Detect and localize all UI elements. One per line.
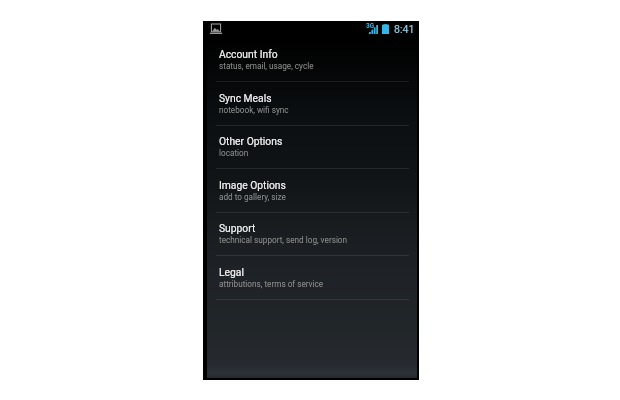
staticText: attributions, terms of service	[219, 279, 324, 289]
button[interactable]: Account Info	[203, 38, 419, 82]
staticText: Other Options	[219, 135, 283, 147]
staticText: add to gallery, size	[219, 192, 286, 202]
button[interactable]: Sync Meals	[203, 82, 419, 126]
staticText: location	[219, 148, 249, 158]
staticText: 8:41	[394, 23, 415, 35]
button[interactable]: Support	[203, 212, 419, 256]
staticText: Sync Meals	[219, 92, 272, 104]
button[interactable]: Other Options	[203, 125, 419, 169]
staticText: 3G	[366, 22, 375, 30]
staticText: notebook, wifi sync	[219, 105, 289, 115]
staticText: Image Options	[219, 179, 286, 191]
staticText: Account Info	[219, 48, 278, 60]
button[interactable]: Legal	[203, 256, 419, 300]
staticText: Legal	[219, 266, 244, 278]
other: Screenshot captured	[210, 24, 222, 34]
button[interactable]: Image Options	[203, 169, 419, 213]
staticText: status, email, usage, cycle	[219, 61, 314, 71]
staticText: technical support, send log, version	[219, 235, 348, 245]
staticText: Support	[219, 222, 256, 234]
